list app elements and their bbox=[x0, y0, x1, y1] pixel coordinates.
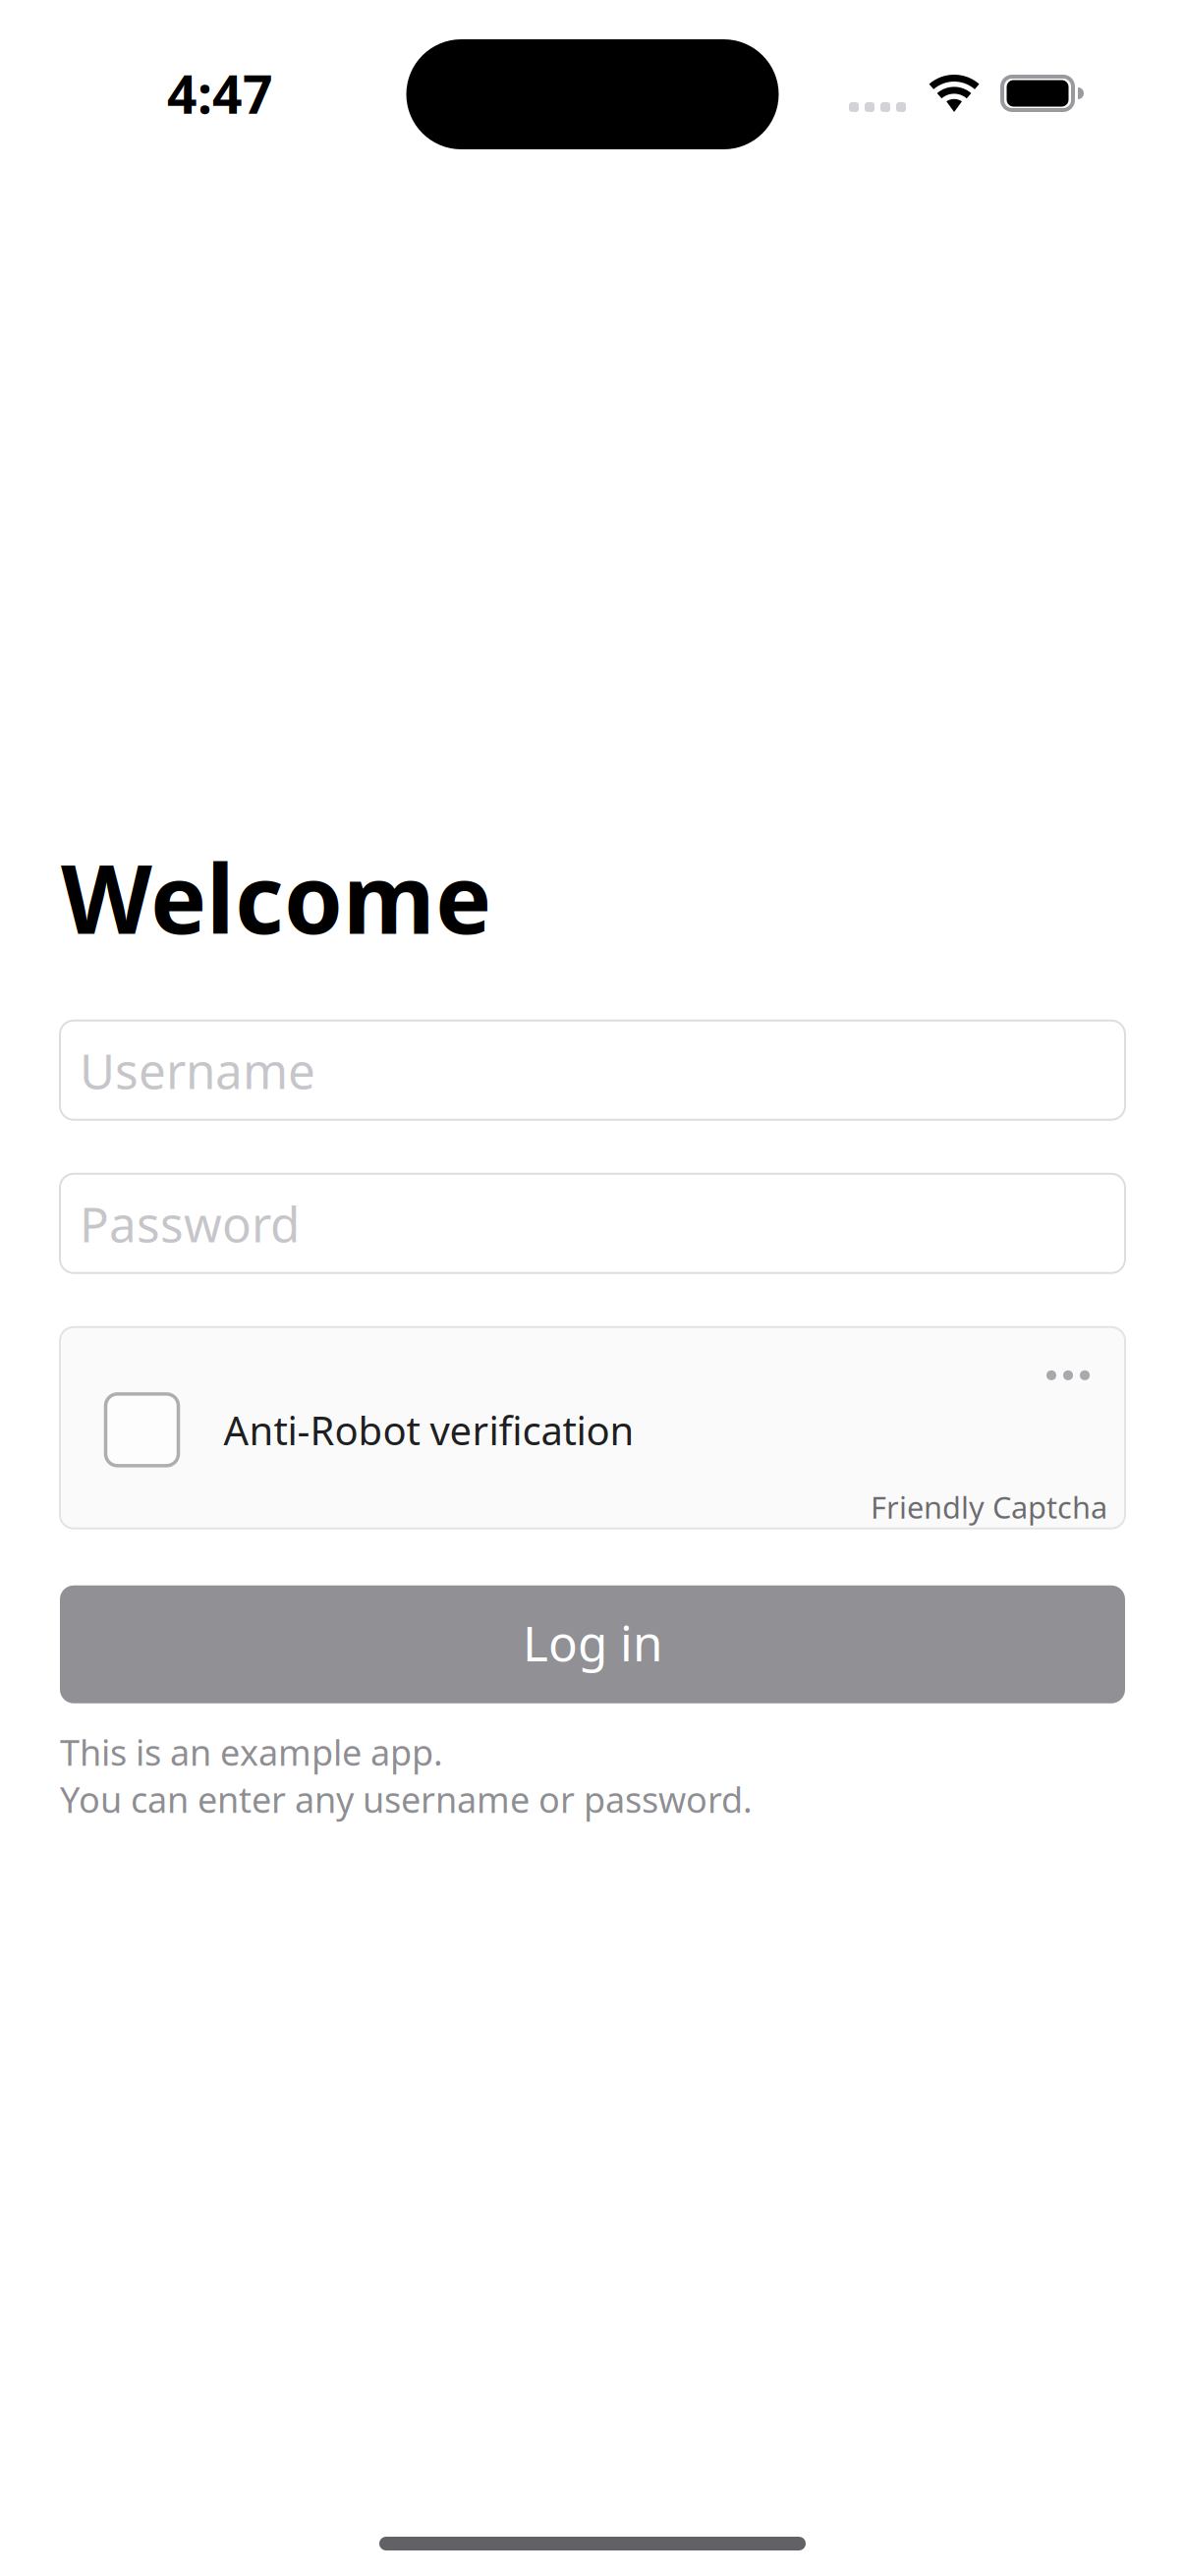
staticText: Anti-Robot verification bbox=[224, 1403, 634, 1457]
button[interactable]: Log in bbox=[60, 1585, 1125, 1703]
button[interactable]: Password bbox=[60, 1174, 1125, 1273]
staticText: Welcome bbox=[61, 833, 491, 962]
staticText: Username bbox=[80, 1037, 315, 1103]
staticText: Log in bbox=[523, 1609, 662, 1675]
button[interactable]: Username bbox=[60, 1021, 1125, 1120]
staticText: You can enter any username or password. bbox=[60, 1775, 753, 1823]
staticText: Friendly Captcha bbox=[871, 1486, 1107, 1527]
staticText: 4:47 bbox=[167, 58, 273, 129]
button[interactable]: Anti-Robot verification checkbox bbox=[106, 1394, 178, 1466]
button[interactable]: Anti-Robot verification bbox=[60, 1327, 1125, 1529]
staticText: This is an example app. bbox=[60, 1728, 443, 1776]
staticText: Password bbox=[80, 1190, 300, 1256]
